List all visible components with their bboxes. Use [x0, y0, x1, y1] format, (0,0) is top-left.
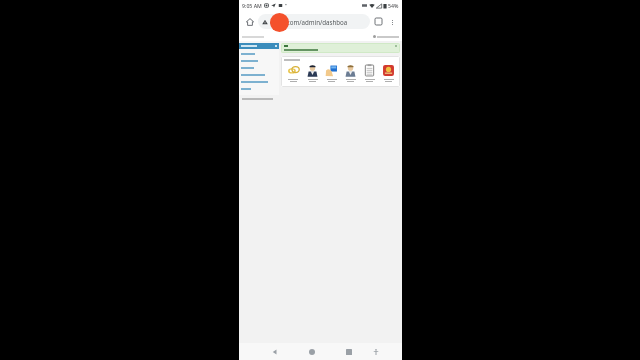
button[interactable] [239, 58, 279, 63]
button[interactable]: o-me.com/admin/dashboa [258, 14, 370, 29]
button[interactable]: More options [386, 16, 398, 28]
button[interactable]: Shortcut 4 [342, 64, 359, 82]
button[interactable] [239, 51, 279, 56]
button[interactable]: Shortcut 3 [323, 64, 340, 82]
staticText: 54% [388, 2, 399, 9]
button[interactable]: Home [304, 344, 320, 360]
button[interactable]: Recent apps [341, 344, 357, 360]
staticText: 9:05 AM [242, 2, 262, 9]
button[interactable] [239, 72, 279, 77]
button[interactable]: Shortcut 1 [284, 64, 302, 82]
button[interactable]: Shortcut 5 [361, 64, 378, 82]
button[interactable] [239, 86, 279, 91]
button[interactable]: Accessibility [369, 345, 383, 359]
button[interactable]: Tabs [372, 15, 385, 28]
staticText: • [285, 2, 287, 9]
button[interactable]: Shortcut 2 [304, 64, 321, 82]
button[interactable]: Shortcut 6 [380, 64, 397, 82]
button[interactable]: Back [267, 344, 283, 360]
button[interactable] [239, 79, 279, 84]
staticText: o-me.com/admin/dashboa [270, 18, 348, 26]
button[interactable]: Home [243, 15, 257, 29]
button[interactable] [239, 65, 279, 70]
button[interactable] [239, 43, 279, 49]
